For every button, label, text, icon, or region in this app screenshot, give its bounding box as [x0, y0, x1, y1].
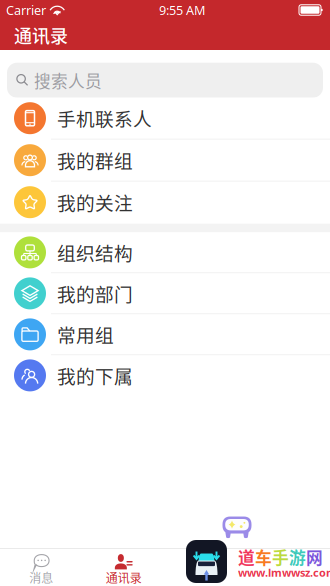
button[interactable]: 常用组 [0, 314, 330, 355]
staticText: 网 [306, 545, 323, 569]
staticText: 手 [272, 545, 289, 569]
staticText: 我的群组 [57, 147, 133, 174]
button[interactable]: 我的部门 [0, 273, 330, 314]
staticText: 组织结构 [57, 239, 133, 266]
staticText: 通讯录 [14, 22, 68, 48]
staticText: 游 [289, 545, 306, 569]
staticText: www.lmwwsz.com [238, 565, 330, 580]
staticText: 搜索人员 [34, 68, 102, 92]
staticText: 我的部门 [57, 280, 133, 307]
button[interactable]: 我的下属 [0, 355, 330, 396]
staticText: 道 [238, 545, 255, 569]
staticText: Carrier [6, 1, 46, 19]
button[interactable]: 组织结构 [0, 232, 330, 273]
button[interactable]: 我的关注 [0, 182, 330, 224]
staticText: 手机联系人 [57, 105, 152, 132]
staticText: 我的关注 [57, 189, 133, 216]
staticText: 通讯录 [106, 569, 142, 586]
staticText: 我的下属 [57, 362, 133, 389]
button[interactable]: 通讯录 [82, 549, 165, 586]
staticText: 消息 [29, 569, 53, 586]
staticText: 常用组 [57, 321, 114, 348]
staticText: 9:55 AM [159, 1, 205, 19]
button[interactable]: 消息 [0, 549, 82, 586]
button[interactable]: 搜索人员 [7, 63, 323, 98]
button[interactable]: 手机联系人 [0, 98, 330, 140]
button[interactable]: 我的群组 [0, 140, 330, 182]
staticText: 车 [255, 545, 272, 569]
